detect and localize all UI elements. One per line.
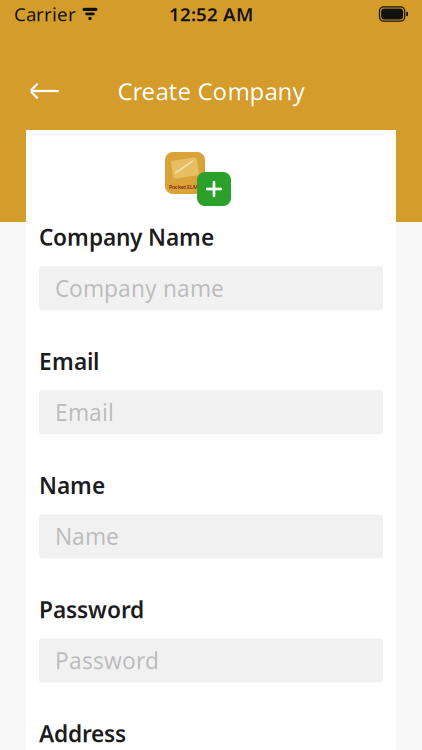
staticText: Name [55,521,119,551]
button[interactable]: Back [18,69,70,113]
staticText: Carrier [14,2,76,26]
staticText: Password [39,594,144,624]
staticText: Email [55,397,114,427]
button[interactable]: Password [39,638,383,682]
staticText: Password [55,645,159,675]
staticText: Name [39,470,105,500]
button[interactable]: Name [39,514,383,558]
button[interactable]: Email [39,390,383,434]
button[interactable]: Company name [39,266,383,310]
staticText: Address [39,718,126,748]
staticText: Company Name [39,222,214,252]
staticText: Create Company [117,75,304,107]
staticText: Email [39,346,99,376]
staticText: Company name [55,273,224,303]
staticText: 12:52 AM [169,2,253,26]
button[interactable]: Add company logo [197,172,231,206]
staticText: Pocket ELMS [169,183,201,191]
